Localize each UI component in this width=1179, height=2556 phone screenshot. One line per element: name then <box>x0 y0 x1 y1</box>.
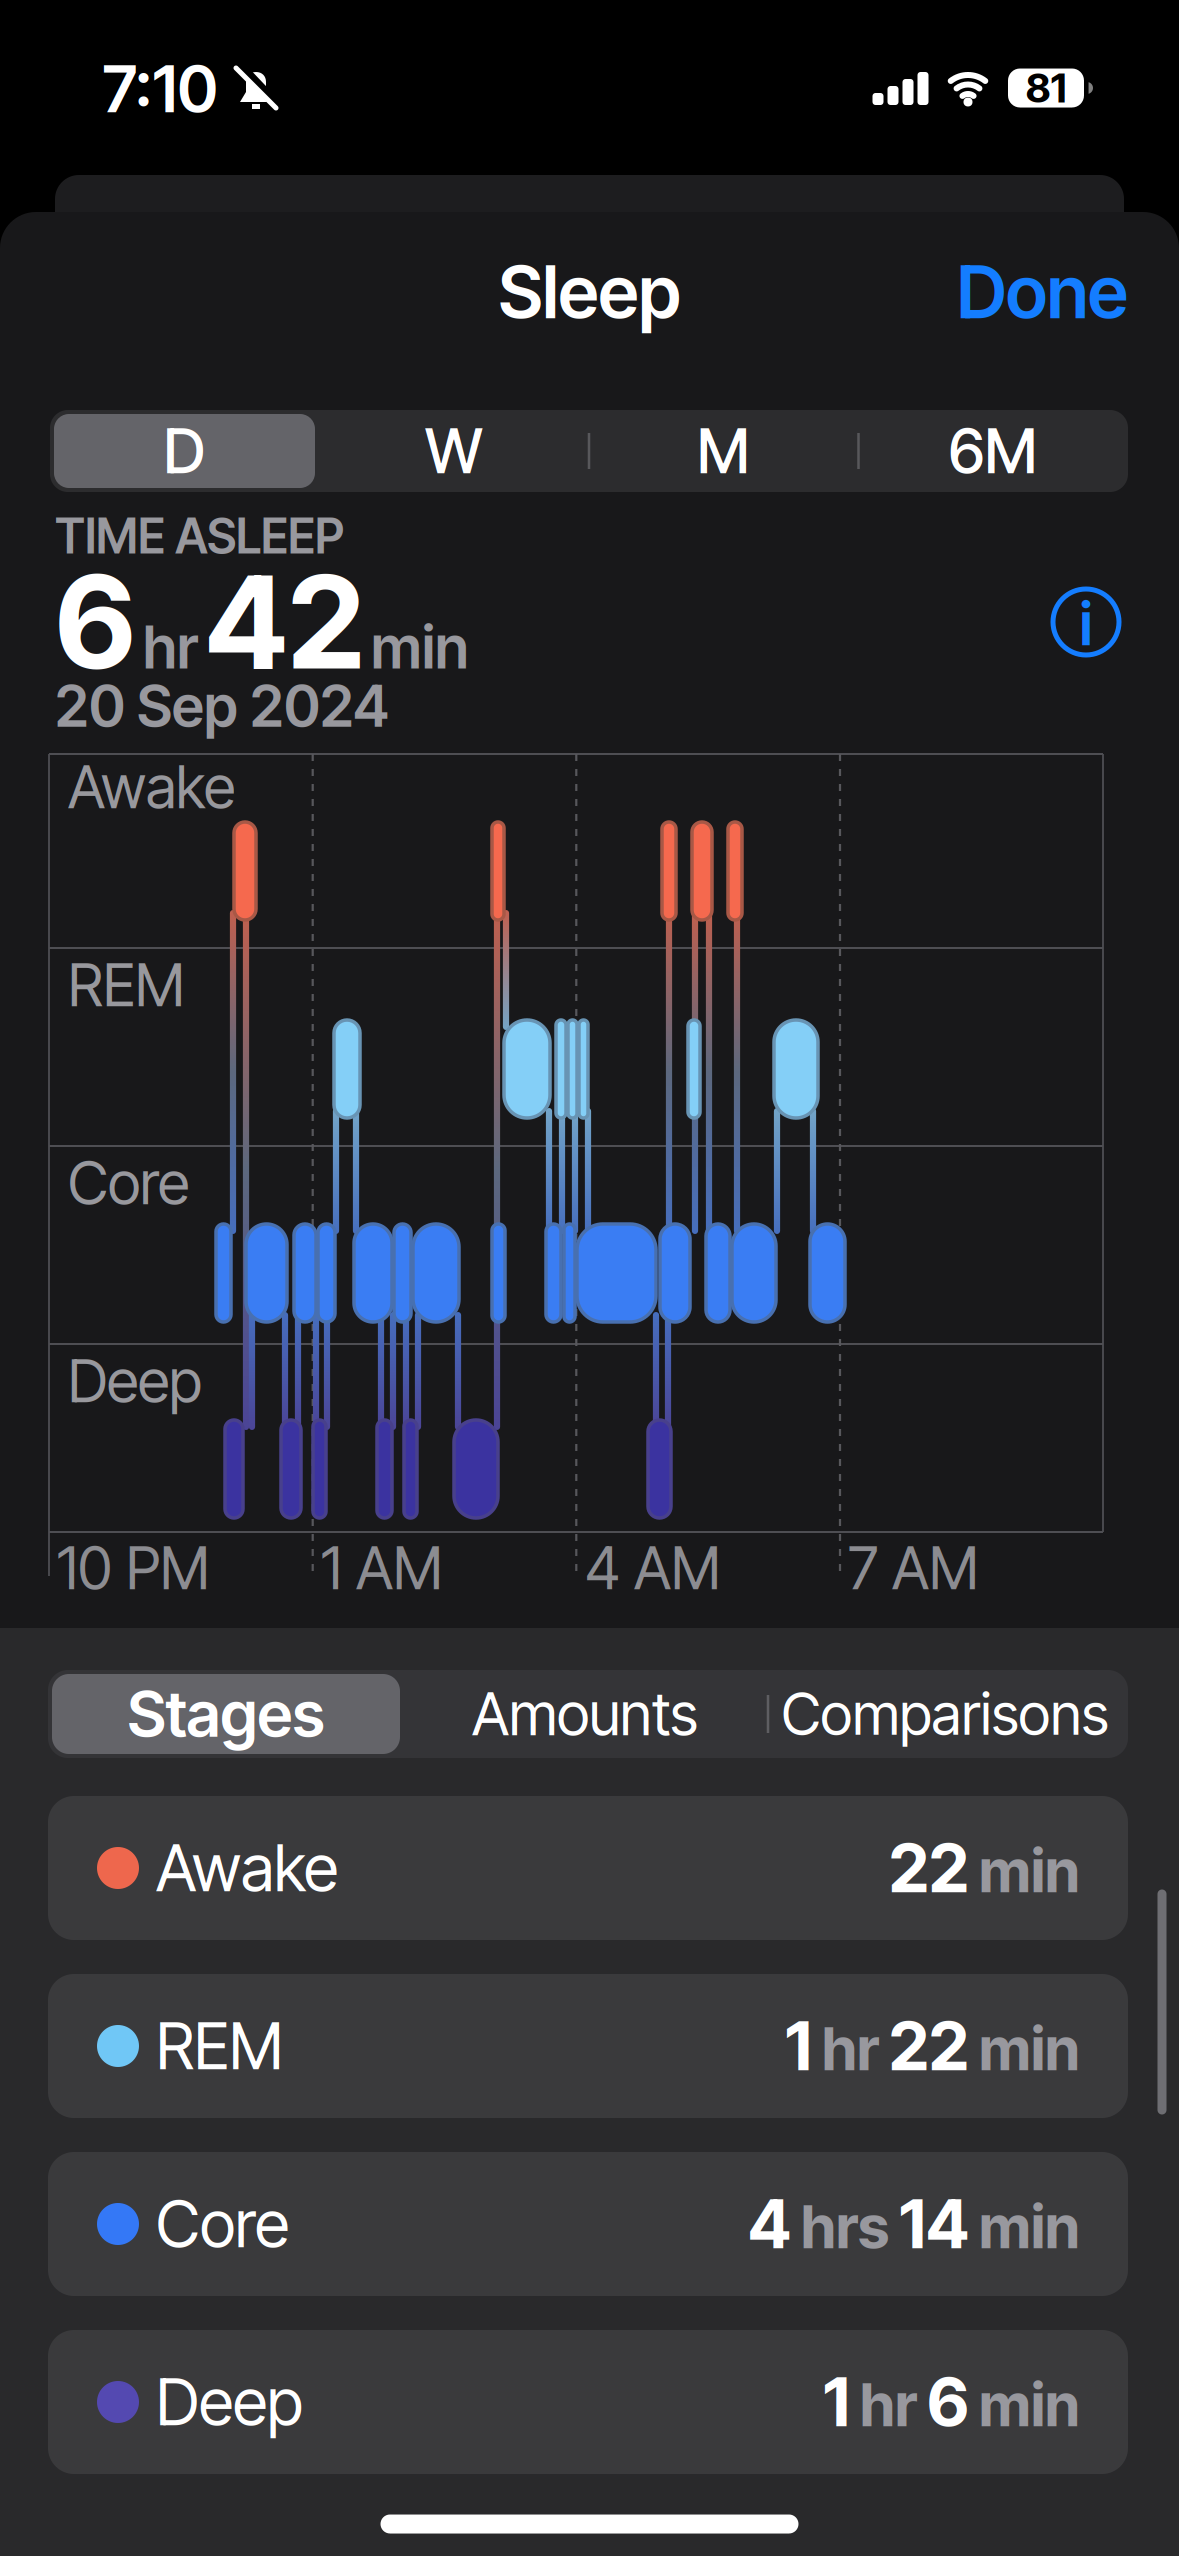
staticText: Deep <box>68 1346 202 1416</box>
staticText: 1 <box>785 2007 812 2085</box>
staticText: hr <box>822 2014 879 2083</box>
staticText: Amounts <box>472 1679 698 1749</box>
staticText: REM <box>156 2008 283 2084</box>
staticText: M <box>697 415 750 487</box>
staticText: min <box>979 2014 1080 2083</box>
staticText: Comparisons <box>781 1680 1108 1748</box>
staticText: TIME ASLEEP <box>55 508 344 564</box>
staticText: 6 <box>55 546 136 697</box>
staticText: 10 PM <box>57 1533 210 1603</box>
staticText: 81 <box>1025 64 1066 112</box>
staticText: Awake <box>156 1830 338 1906</box>
staticText: Core <box>68 1148 189 1218</box>
staticText: 7 AM <box>848 1533 979 1603</box>
staticText: REM <box>68 950 185 1020</box>
staticText: hr <box>860 2370 917 2439</box>
staticText: 4 AM <box>585 1533 721 1603</box>
staticText: min <box>979 2370 1080 2439</box>
staticText: Awake <box>68 752 235 822</box>
staticText: 4 <box>748 2185 791 2263</box>
staticText: 7:10 <box>102 51 217 127</box>
staticText: 1 <box>823 2363 850 2441</box>
staticText: 1 AM <box>321 1533 443 1603</box>
staticText: 6M <box>948 415 1037 487</box>
staticText: 20 Sep 2024 <box>55 672 389 740</box>
staticText: Deep <box>156 2364 303 2440</box>
staticText: W <box>425 415 483 487</box>
staticText: Stages <box>127 1677 324 1751</box>
staticText: 22 <box>889 2007 969 2085</box>
staticText: 14 <box>899 2185 969 2263</box>
staticText: Sleep <box>498 249 680 334</box>
staticText: hr <box>143 613 198 682</box>
staticText: Core <box>156 2186 289 2262</box>
staticText: min <box>979 1836 1080 1905</box>
staticText: min <box>979 2192 1080 2261</box>
staticText: min <box>371 613 469 682</box>
staticText: 42 <box>205 546 364 697</box>
staticText: D <box>163 415 205 487</box>
staticText: i <box>1079 589 1092 659</box>
staticText: 6 <box>927 2363 969 2441</box>
staticText: Done <box>957 249 1128 334</box>
staticText: hrs <box>801 2192 889 2261</box>
staticText: 22 <box>889 1829 969 1907</box>
